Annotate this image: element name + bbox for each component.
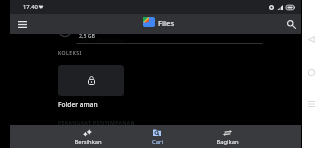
staticText: Cari: [152, 138, 163, 146]
staticText: Bagikan: [216, 138, 239, 146]
button[interactable]: Search: [283, 16, 300, 33]
button[interactable]: Home: [302, 63, 320, 81]
button[interactable]: Back: [302, 30, 320, 48]
staticText: 17.40: [23, 3, 38, 11]
button[interactable]: Folder aman: [58, 65, 124, 96]
staticText: PERANGKAT PENYIMPANAN: [58, 119, 135, 126]
button[interactable]: Cari: [122, 125, 192, 148]
staticText: dari 32 GB digunakan: [79, 37, 126, 43]
staticText: Bersihkan: [74, 138, 102, 146]
button[interactable]: Navigation menu: [14, 16, 31, 33]
button[interactable]: Recent apps: [302, 95, 320, 113]
staticText: Folder aman: [58, 100, 98, 109]
button[interactable]: Bersihkan: [53, 125, 122, 148]
staticText: Files: [158, 18, 175, 28]
staticText: 2,5 GB: [79, 32, 95, 39]
button[interactable]: Bagikan: [192, 125, 262, 148]
staticText: KOLEKSI: [58, 49, 82, 56]
